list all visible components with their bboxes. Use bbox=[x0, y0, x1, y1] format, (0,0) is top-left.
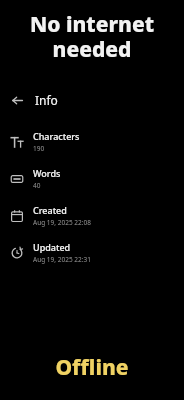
button[interactable]: Characters bbox=[0, 123, 184, 160]
staticText: Characters bbox=[33, 130, 80, 142]
staticText: No internet needed bbox=[8, 10, 176, 63]
button[interactable]: Back bbox=[8, 91, 26, 109]
button[interactable]: Updated bbox=[0, 234, 184, 271]
staticText: Info bbox=[35, 92, 58, 108]
button[interactable]: Words bbox=[0, 160, 184, 197]
staticText: 190 bbox=[33, 144, 45, 153]
staticText: Aug 19, 2025 22:08 bbox=[33, 218, 91, 227]
staticText: Words bbox=[33, 167, 61, 179]
staticText: Created bbox=[33, 204, 67, 216]
staticText: Aug 19, 2025 22:31 bbox=[33, 255, 91, 264]
staticText: 40 bbox=[33, 181, 41, 190]
staticText: Offline bbox=[0, 353, 184, 382]
staticText: Updated bbox=[33, 241, 71, 253]
button[interactable]: Created bbox=[0, 197, 184, 234]
